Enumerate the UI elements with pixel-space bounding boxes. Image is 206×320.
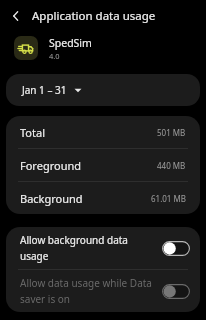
button[interactable]: Foreground xyxy=(6,149,200,181)
button[interactable]: Allow data usage while Data xyxy=(6,270,200,312)
button[interactable]: Allow background data xyxy=(6,227,200,269)
staticText: Application data usage xyxy=(32,8,156,24)
staticText: SpedSim xyxy=(49,36,92,50)
button[interactable]: Back xyxy=(4,4,28,28)
button[interactable]: Background xyxy=(6,182,200,214)
staticText: Jan 1 – 31 xyxy=(22,83,67,97)
staticText: saver is on xyxy=(20,292,71,306)
staticText: Total xyxy=(20,125,45,140)
button[interactable]: Total xyxy=(6,116,200,148)
staticText: Allow background data xyxy=(20,233,128,247)
button[interactable]: Toggle on xyxy=(162,241,190,256)
button[interactable]: Jan 1 – 31 xyxy=(6,74,200,106)
staticText: 501 MB xyxy=(157,127,186,138)
staticText: usage xyxy=(20,249,49,263)
staticText: Foreground xyxy=(20,158,81,173)
staticText: 4.0 xyxy=(49,51,60,61)
staticText: Background xyxy=(20,191,83,206)
staticText: Allow data usage while Data xyxy=(20,276,152,290)
staticText: 61.01 MB xyxy=(151,193,186,204)
staticText: 440 MB xyxy=(157,160,186,171)
button[interactable]: Toggle disabled xyxy=(162,284,190,299)
